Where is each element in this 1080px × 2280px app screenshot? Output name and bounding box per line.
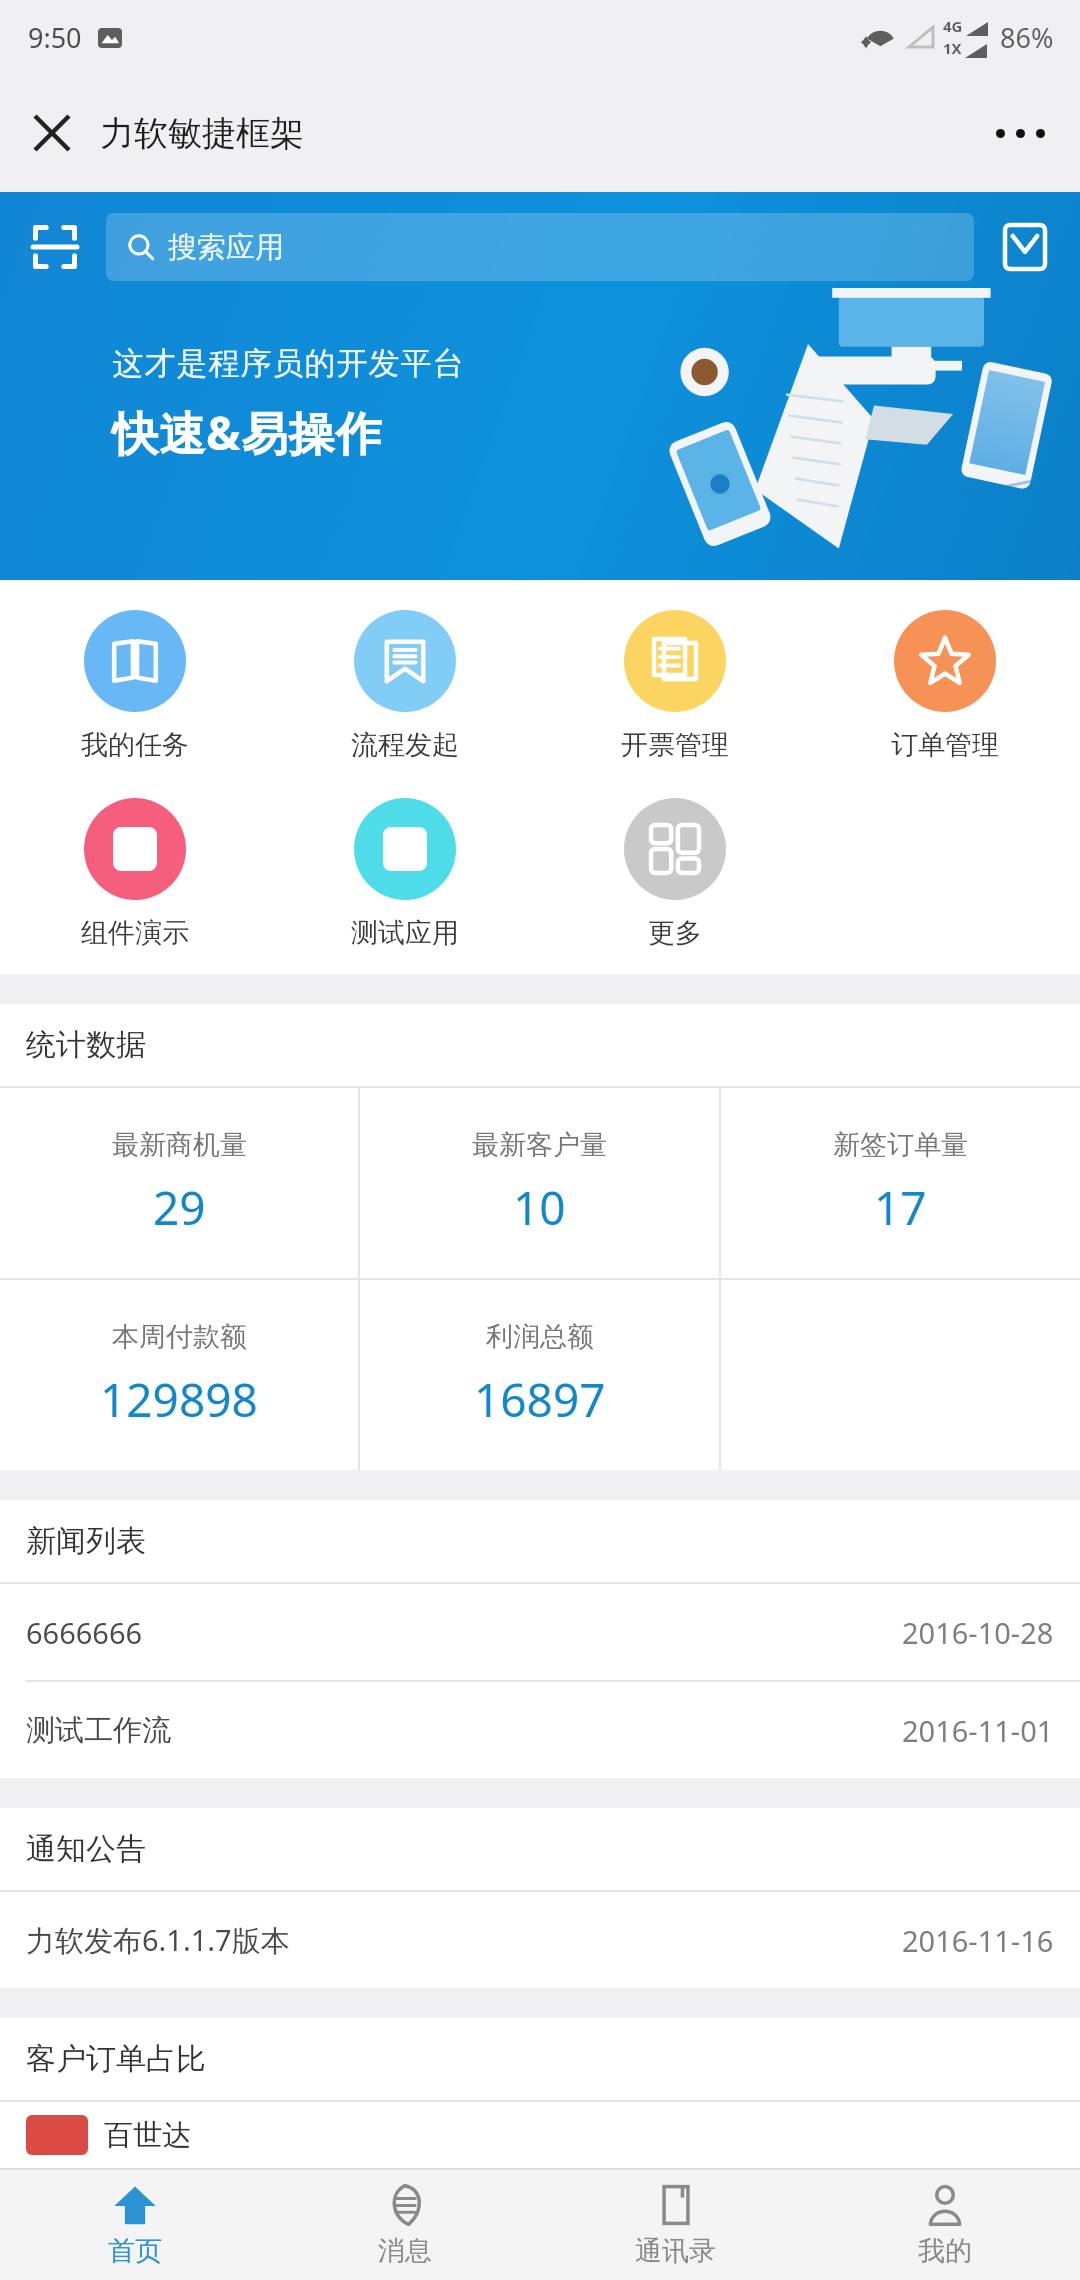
staticText: 1X xyxy=(943,38,962,58)
staticText: 组件演示 xyxy=(81,916,189,950)
staticText: 测试工作流 xyxy=(26,1712,171,1749)
staticText: 新闻列表 xyxy=(26,1522,146,1560)
button[interactable]: 6666666 xyxy=(0,1584,1080,1680)
staticText: 通讯录 xyxy=(635,2234,716,2268)
button[interactable]: 通讯录 xyxy=(540,2170,810,2280)
button[interactable]: 开票管理 xyxy=(621,606,729,766)
button[interactable]: 测试应用 xyxy=(351,794,459,954)
button[interactable]: 我的 xyxy=(810,2170,1080,2280)
staticText: 本周付款额 xyxy=(112,1320,247,1354)
button[interactable]: 订单管理 xyxy=(891,606,999,766)
staticText: 我的任务 xyxy=(81,728,189,762)
staticText: 129898 xyxy=(100,1368,258,1431)
button[interactable]: 新签订单量 xyxy=(721,1088,1080,1278)
staticText: 客户订单占比 xyxy=(26,2040,206,2078)
staticText: 2016-11-16 xyxy=(902,1921,1054,1960)
staticText: 力软发布6.1.1.7版本 xyxy=(26,1920,290,1960)
button[interactable]: 消息 xyxy=(270,2170,540,2280)
button[interactable]: Close xyxy=(22,103,304,163)
button[interactable]: 最新商机量 xyxy=(0,1088,358,1278)
staticText: 9:50 xyxy=(28,19,82,56)
staticText: 统计数据 xyxy=(26,1026,146,1064)
button[interactable]: 首页 xyxy=(0,2170,270,2280)
button[interactable]: 组件演示 xyxy=(81,794,189,954)
button[interactable]: 搜索应用 xyxy=(106,213,974,281)
staticText: 最新客户量 xyxy=(472,1128,607,1162)
staticText: 搜索应用 xyxy=(168,229,284,266)
staticText: 通知公告 xyxy=(26,1830,146,1868)
staticText: 更多 xyxy=(648,916,702,950)
staticText: 4G xyxy=(943,16,963,36)
button[interactable]: 更多 xyxy=(624,794,726,954)
staticText: 2016-11-01 xyxy=(902,1711,1054,1750)
button[interactable]: Scan xyxy=(24,216,86,278)
staticText: 最新商机量 xyxy=(112,1128,247,1162)
staticText: 测试应用 xyxy=(351,916,459,950)
staticText: 订单管理 xyxy=(891,728,999,762)
staticText: 开票管理 xyxy=(621,728,729,762)
staticText: 百世达 xyxy=(104,2117,191,2154)
button[interactable]: 利润总额 xyxy=(360,1280,719,1470)
staticText: 2016-10-28 xyxy=(902,1613,1054,1652)
button[interactable]: 流程发起 xyxy=(351,606,459,766)
staticText: 17 xyxy=(874,1176,927,1239)
staticText: 29 xyxy=(153,1176,206,1239)
staticText: 10 xyxy=(513,1176,566,1239)
staticText: 新签订单量 xyxy=(833,1128,968,1162)
staticText: 流程发起 xyxy=(351,728,459,762)
button[interactable]: 力软发布6.1.1.7版本 xyxy=(0,1892,1080,1988)
button[interactable]: 测试工作流 xyxy=(0,1682,1080,1778)
other: Close xyxy=(22,103,82,163)
staticText: 16897 xyxy=(474,1368,606,1431)
button[interactable]: More options xyxy=(982,95,1058,171)
button[interactable]: 百世达 xyxy=(0,2102,1080,2168)
staticText: 首页 xyxy=(108,2234,162,2268)
staticText: 力软敏捷框架 xyxy=(100,112,304,155)
button[interactable]: 我的任务 xyxy=(81,606,189,766)
staticText: 86% xyxy=(1000,19,1054,56)
button[interactable]: Messages xyxy=(994,216,1056,278)
staticText: 6666666 xyxy=(26,1613,143,1652)
staticText: 我的 xyxy=(918,2234,972,2268)
staticText: 利润总额 xyxy=(486,1320,594,1354)
button[interactable]: 本周付款额 xyxy=(0,1280,358,1470)
button[interactable]: 最新客户量 xyxy=(360,1088,719,1278)
staticText: 快速&易操作 xyxy=(112,401,383,464)
staticText: 消息 xyxy=(378,2234,432,2268)
staticText: 这才是程序员的开发平台 xyxy=(112,344,464,383)
